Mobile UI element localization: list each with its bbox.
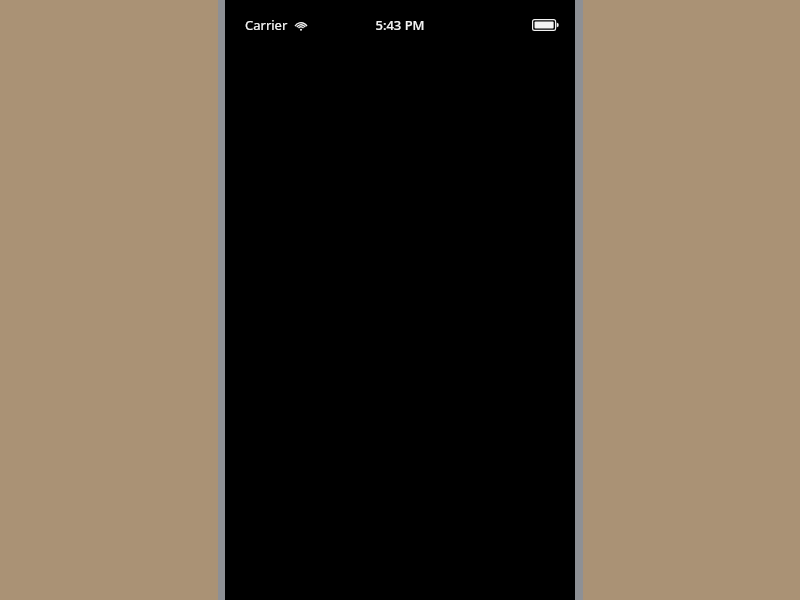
staticText: Carrier: [245, 16, 288, 34]
staticText: 5:43 PM: [375, 16, 425, 34]
button[interactable]: Battery full: [530, 17, 561, 33]
button[interactable]: Carrier: [243, 14, 310, 36]
button[interactable]: 5:43 PM: [371, 14, 429, 36]
other: Wi-Fi signal: [294, 18, 308, 32]
